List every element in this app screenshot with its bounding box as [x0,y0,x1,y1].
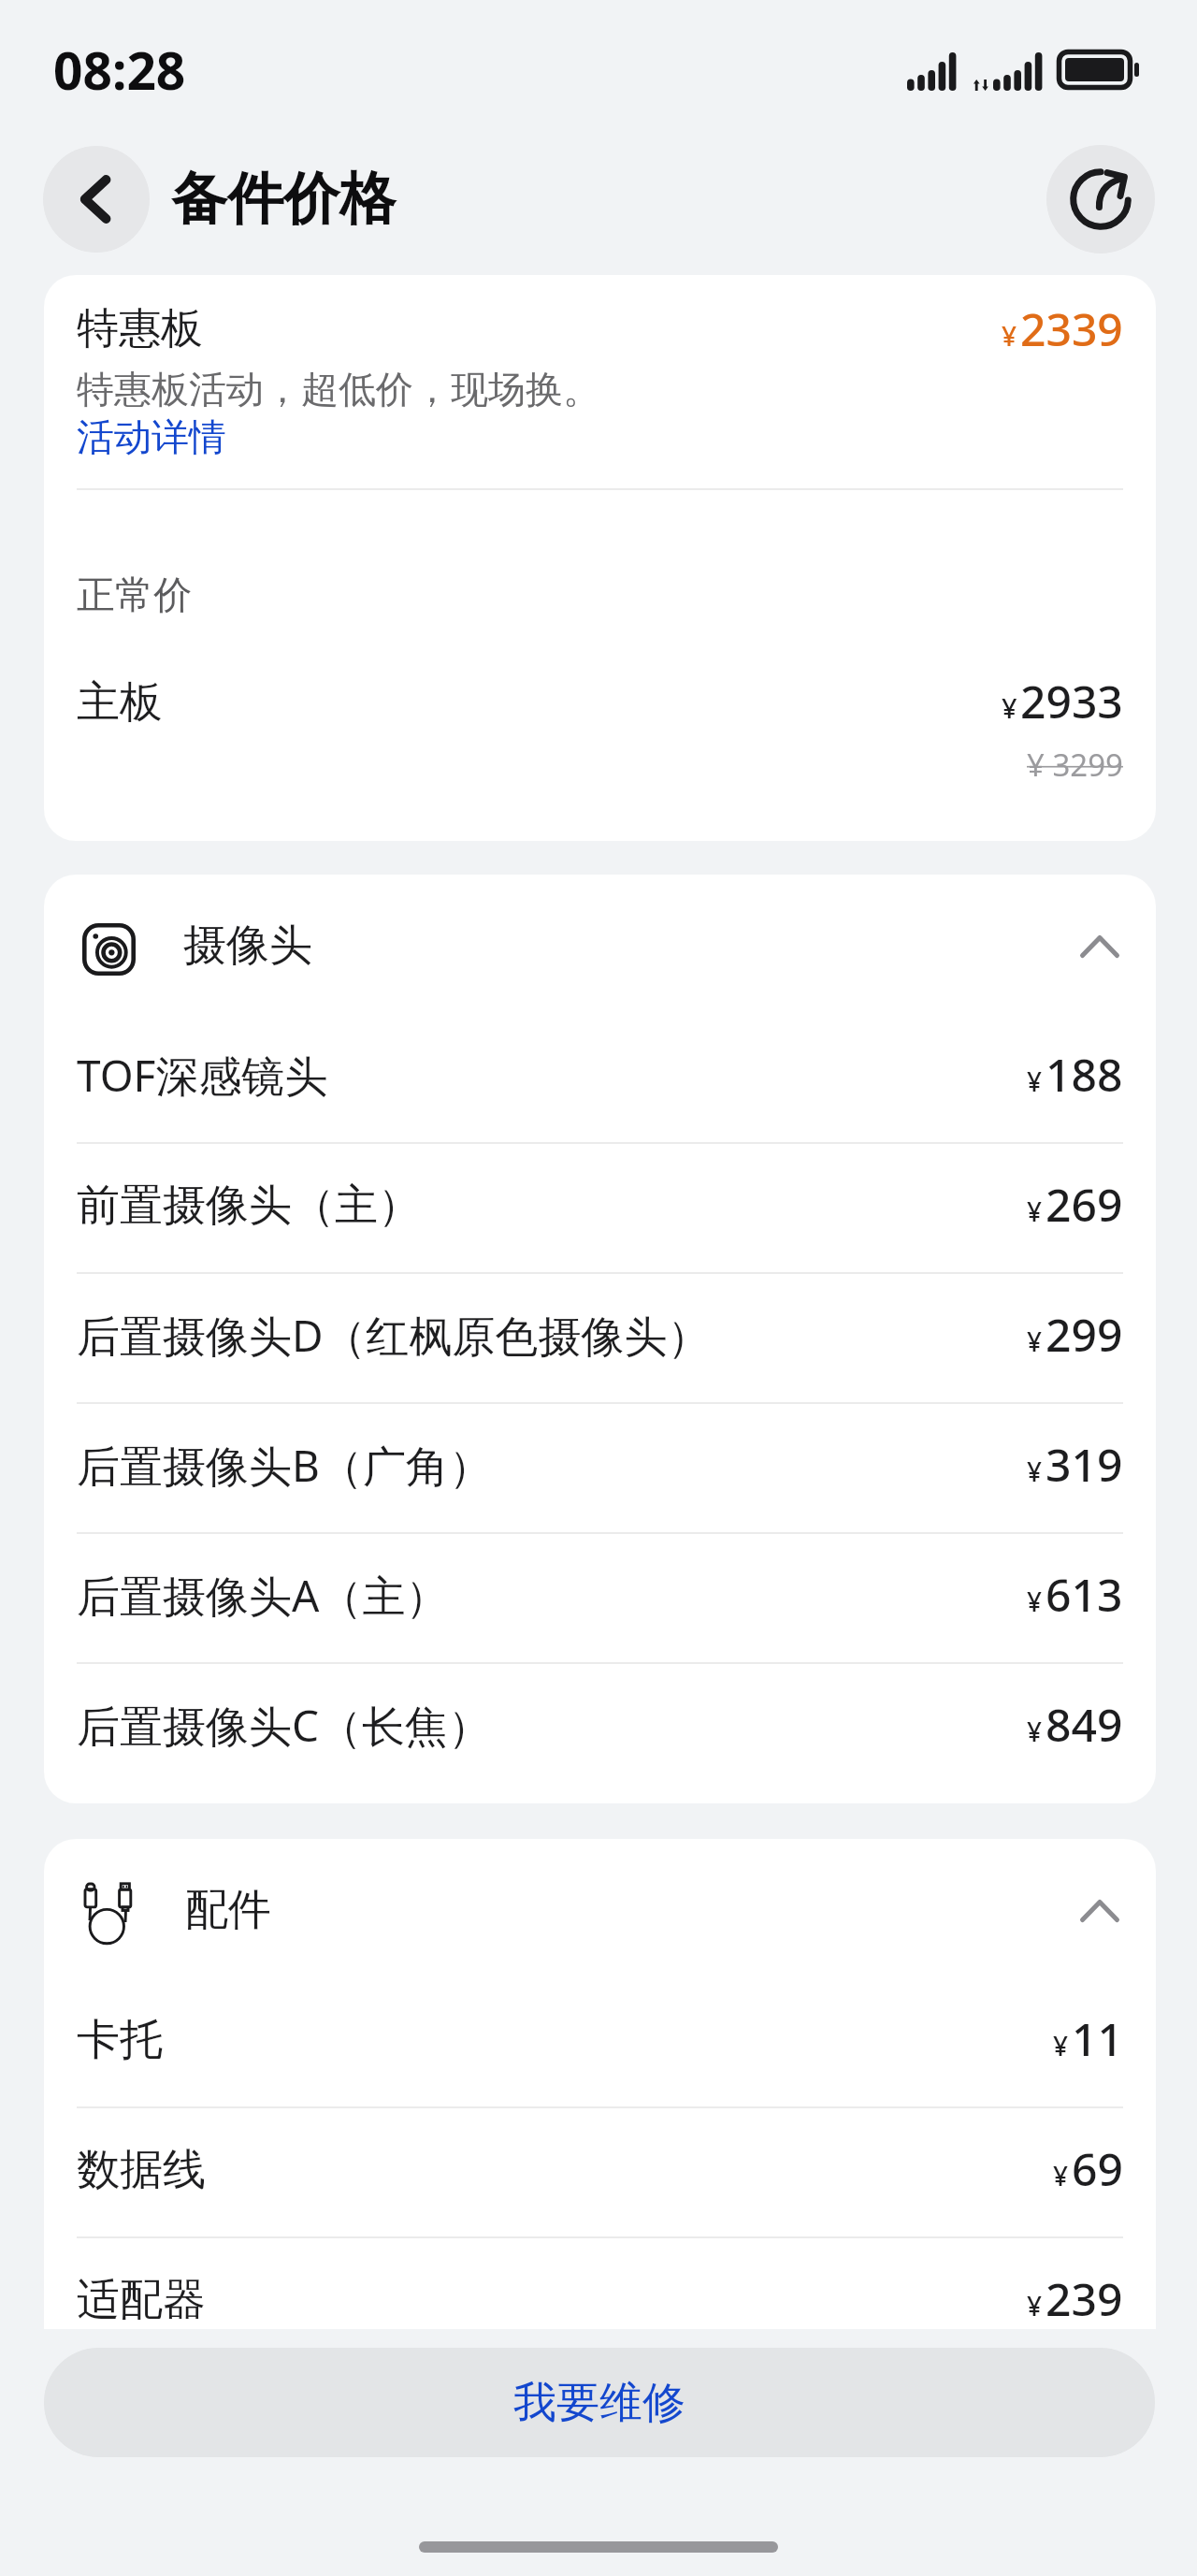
staticText: 配件 [185,1883,271,1937]
staticText: ¥ 3299 [1027,744,1123,786]
staticText: 08:28 [53,35,186,105]
button[interactable]: 适配器 [44,2238,1156,2329]
staticText: 319 [1046,1434,1123,1495]
button[interactable]: 我要维修 [44,2348,1155,2457]
staticText: 摄像头 [183,919,312,973]
staticText: ¥ [1053,2158,1069,2193]
button[interactable]: 后置摄像头B（广角） [44,1404,1156,1532]
staticText: 后置摄像头C（长焦） [77,1696,492,1755]
staticText: ¥ [1053,2028,1069,2063]
staticText: 备件价格 [171,164,396,235]
button[interactable]: TOF深感镜头 [44,1014,1156,1142]
button[interactable]: 前置摄像头（主） [44,1144,1156,1272]
staticText: 11 [1072,2008,1123,2069]
staticText: 2933 [1020,671,1123,731]
staticText: 269 [1046,1174,1123,1235]
staticText: ¥ [1027,1454,1043,1489]
staticText: 239 [1046,2268,1123,2329]
staticText: 活动详情 [77,413,226,460]
staticText: 188 [1046,1044,1123,1105]
staticText: ¥ [1002,689,1017,726]
staticText: ¥ [1027,1714,1043,1749]
staticText: 69 [1072,2138,1123,2199]
staticText: 卡托 [77,2013,163,2067]
staticText: 我要维修 [513,2376,685,2430]
button[interactable]: 配件 [44,1839,1156,1978]
button[interactable]: 后置摄像头C（长焦） [44,1664,1156,1792]
staticText: 适配器 [77,2273,206,2327]
button[interactable]: 数据线 [44,2108,1156,2236]
staticText: ¥ [1027,2288,1043,2323]
staticText: ¥ [1027,1194,1043,1229]
staticText: ¥ [1002,318,1017,354]
staticText: 613 [1046,1564,1123,1625]
staticText: 前置摄像头（主） [77,1179,421,1233]
button[interactable]: 卡托 [44,1978,1156,2106]
staticText: 299 [1046,1304,1123,1365]
button[interactable]: 活动详情 [77,413,226,460]
button[interactable]: Share [1046,145,1155,253]
staticText: ¥ [1027,1064,1043,1099]
staticText: 2339 [1020,298,1123,359]
staticText: 后置摄像头A（主） [77,1566,449,1625]
staticText: 后置摄像头B（广角） [77,1436,492,1495]
button[interactable]: 后置摄像头D（红枫原色摄像头） [44,1274,1156,1402]
staticText: ¥ [1027,1324,1043,1359]
button[interactable]: 后置摄像头A（主） [44,1534,1156,1662]
staticText: TOF深感镜头 [77,1046,328,1105]
staticText: 849 [1046,1694,1123,1755]
button[interactable]: 摄像头 [44,875,1156,1014]
button[interactable]: Back [43,146,150,253]
staticText: 数据线 [77,2143,206,2197]
staticText: 主板 [77,675,163,730]
staticText: 特惠板活动，超低价，现场换。 [77,366,600,412]
staticText: 后置摄像头D（红枫原色摄像头） [77,1306,711,1365]
staticText: 正常价 [77,572,192,620]
staticText: 特惠板 [77,302,203,355]
staticText: ¥ [1027,1584,1043,1619]
